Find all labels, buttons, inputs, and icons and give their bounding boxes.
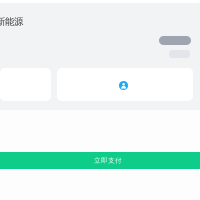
button[interactable]: Tag [159,36,191,45]
staticText: 新能源 [0,16,23,27]
button[interactable]: 立即支付 [0,152,200,169]
staticText: 立即支付 [94,156,122,165]
button[interactable]: Account card [57,68,193,101]
